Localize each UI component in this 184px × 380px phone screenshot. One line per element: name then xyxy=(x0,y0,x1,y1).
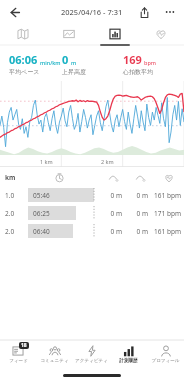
staticText: フィード xyxy=(9,358,28,364)
staticText: 2025/04/16 - 7:31 xyxy=(61,7,123,17)
button[interactable]: Share xyxy=(134,2,154,22)
staticText: 1.0 xyxy=(5,191,28,200)
button[interactable]: More options xyxy=(160,2,180,22)
button[interactable]: Charts xyxy=(92,24,138,44)
staticText: 0 m xyxy=(100,227,122,236)
button[interactable]: 2.0 xyxy=(0,222,184,240)
staticText: 0 xyxy=(62,52,69,67)
button[interactable]: Heart rate xyxy=(138,24,184,44)
staticText: 05:46 xyxy=(33,191,50,200)
staticText: 0 m xyxy=(128,209,148,218)
button[interactable]: 2.0 xyxy=(0,204,184,222)
staticText: 161 bpm xyxy=(153,191,181,200)
staticText: 上昇高度 xyxy=(62,68,86,76)
staticText: 2.0 xyxy=(5,227,28,236)
staticText: 18 xyxy=(21,342,27,349)
staticText: コミュニティ xyxy=(40,358,69,364)
staticText: プロフィール xyxy=(151,358,180,364)
staticText: 心拍数平均 xyxy=(123,68,153,76)
staticText: 169 xyxy=(123,52,142,67)
staticText: 0 m xyxy=(128,191,148,200)
button[interactable]: アクティビティ xyxy=(73,341,110,370)
button[interactable]: Photos xyxy=(46,24,92,44)
staticText: 06:40 xyxy=(33,227,50,236)
staticText: 平均ペース xyxy=(9,68,40,76)
staticText: 2 km xyxy=(101,158,114,165)
button[interactable]: 計測履歴 xyxy=(110,341,147,370)
staticText: アクティビティ xyxy=(75,358,108,364)
staticText: min/km xyxy=(40,59,61,66)
staticText: 0 m xyxy=(100,191,122,200)
staticText: bpm xyxy=(144,59,157,66)
button[interactable]: プロフィール xyxy=(147,341,184,370)
staticText: 0 m xyxy=(128,227,148,236)
button[interactable]: Back xyxy=(4,2,24,22)
button[interactable]: 18 xyxy=(0,341,36,370)
staticText: 2.0 xyxy=(5,209,28,218)
staticText: km xyxy=(5,173,28,182)
staticText: m xyxy=(71,59,77,66)
button[interactable]: 1.0 xyxy=(0,186,184,204)
button[interactable]: Map xyxy=(0,24,46,44)
staticText: 161 bpm xyxy=(153,227,181,236)
staticText: 計測履歴 xyxy=(119,358,138,364)
staticText: 0 m xyxy=(100,209,122,218)
staticText: 171 bpm xyxy=(153,209,181,218)
staticText: 1 km xyxy=(40,158,53,165)
staticText: 06:25 xyxy=(33,209,50,218)
button[interactable]: コミュニティ xyxy=(36,341,73,370)
staticText: 06:06 xyxy=(9,52,38,67)
